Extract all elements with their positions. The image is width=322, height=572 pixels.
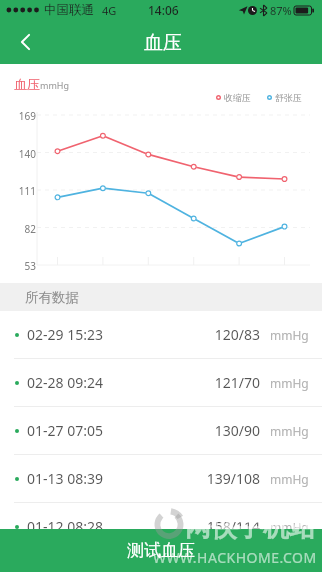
staticText: 02-28 09:24: [27, 373, 103, 392]
staticText: 收缩压: [224, 92, 251, 103]
staticText: 血压: [144, 31, 182, 55]
staticText: WWW.HACKHOME.COM: [153, 548, 317, 567]
staticText: 82: [0, 222, 36, 236]
staticText: 所有数据: [25, 289, 79, 306]
staticText: 121/70: [196, 373, 260, 392]
staticText: 140: [0, 147, 36, 161]
staticText: 血压: [14, 76, 40, 92]
staticText: 53: [0, 259, 36, 273]
staticText: 87%: [270, 3, 292, 18]
staticText: 130/90: [196, 421, 260, 440]
staticText: mmHg: [270, 519, 309, 535]
button[interactable]: Back: [0, 20, 46, 64]
staticText: mmHg: [40, 79, 70, 91]
staticText: 158/114: [196, 517, 260, 536]
button[interactable]: 测试血压: [0, 529, 322, 572]
staticText: mmHg: [270, 327, 309, 343]
button[interactable]: 02-29 15:23: [0, 311, 322, 358]
staticText: 139/108: [196, 469, 260, 488]
staticText: 14:06: [148, 2, 179, 18]
button[interactable]: 01-12 08:28: [0, 503, 322, 550]
staticText: 4G: [102, 3, 117, 18]
button[interactable]: 02-28 09:24: [0, 359, 322, 406]
staticText: 01-12 08:28: [27, 517, 103, 536]
staticText: mmHg: [270, 423, 309, 439]
staticText: 测试血压: [127, 540, 195, 561]
staticText: 网侠手机站: [185, 511, 315, 544]
staticText: 中国联通: [44, 2, 94, 18]
staticText: 舒张压: [275, 92, 302, 103]
staticText: 169: [0, 109, 36, 123]
button[interactable]: 01-13 08:39: [0, 455, 322, 502]
staticText: mmHg: [270, 471, 309, 487]
staticText: mmHg: [270, 375, 309, 391]
staticText: 01-13 08:39: [27, 469, 103, 488]
button[interactable]: 01-27 07:05: [0, 407, 322, 454]
staticText: 02-29 15:23: [27, 325, 103, 344]
staticText: 01-27 07:05: [27, 421, 103, 440]
staticText: 120/83: [196, 325, 260, 344]
staticText: 111: [0, 184, 36, 198]
